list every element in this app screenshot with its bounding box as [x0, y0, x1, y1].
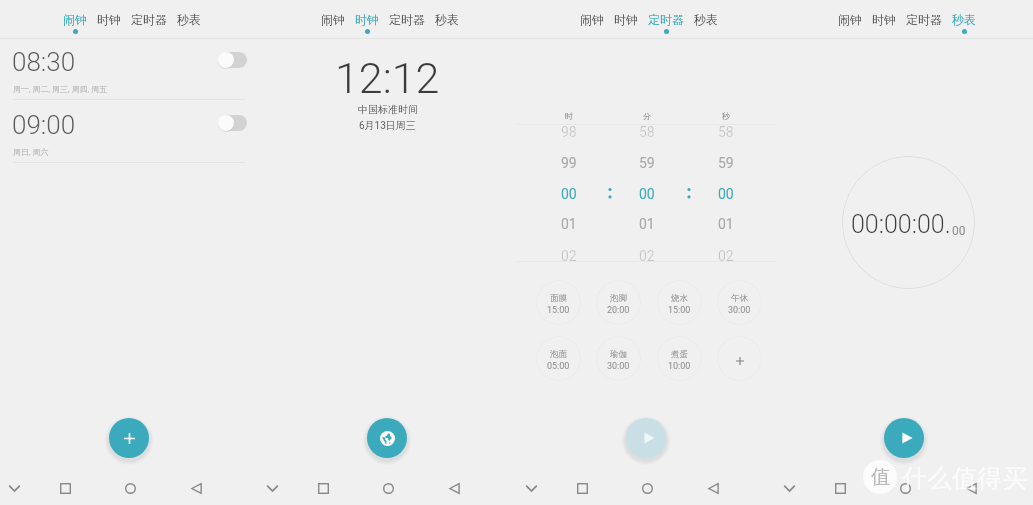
button[interactable]: Home: [372, 472, 404, 504]
button[interactable]: 定时器: [384, 0, 430, 37]
button[interactable]: Back: [180, 472, 212, 504]
staticText: 闹钟: [321, 12, 345, 27]
staticText: 定时器: [131, 12, 167, 27]
staticText: 秒表: [694, 12, 718, 27]
button[interactable]: 秒表: [947, 0, 981, 37]
staticText: 02: [561, 248, 577, 264]
button[interactable]: 瑜伽: [596, 336, 641, 381]
staticText: 秒表: [435, 12, 459, 27]
staticText: 09:00: [12, 110, 76, 140]
button[interactable]: 闹钟: [316, 0, 350, 37]
button[interactable]: 煮蛋: [657, 336, 702, 381]
staticText: 时钟: [872, 12, 896, 27]
button[interactable]: Back: [438, 472, 470, 504]
staticText: 时钟: [355, 12, 379, 27]
staticText: 20:00: [607, 305, 630, 316]
button[interactable]: 时钟: [350, 0, 384, 37]
staticText: 00: [952, 224, 966, 238]
staticText: 30:00: [728, 305, 751, 316]
staticText: 12:12: [335, 53, 440, 103]
button[interactable]: Home: [889, 472, 921, 504]
button[interactable]: 闹钟: [833, 0, 867, 37]
staticText: 58: [718, 124, 734, 140]
staticText: 98: [561, 124, 577, 140]
staticText: 时钟: [614, 12, 638, 27]
button[interactable]: Back: [697, 472, 729, 504]
button[interactable]: 秒表: [689, 0, 723, 37]
staticText: 58: [639, 124, 655, 140]
staticText: 00:00:00.: [851, 210, 951, 239]
button[interactable]: 闹钟: [575, 0, 609, 37]
button[interactable]: Stopwatch: [842, 156, 975, 289]
button[interactable]: Toggle alarm: [218, 51, 247, 69]
button[interactable]: Add preset: [717, 336, 762, 381]
button[interactable]: 定时器: [643, 0, 689, 37]
staticText: 59: [639, 155, 655, 171]
staticText: 15:00: [547, 305, 570, 316]
staticText: 6月13日周三: [359, 119, 416, 132]
staticText: 周一, 周二, 周三, 周四, 周五: [13, 84, 108, 94]
staticText: 01: [561, 216, 577, 232]
button[interactable]: Recents: [49, 472, 81, 504]
staticText: 时钟: [97, 12, 121, 27]
staticText: 00: [561, 186, 577, 202]
staticText: 15:00: [668, 305, 691, 316]
button[interactable]: Add city: [367, 418, 407, 458]
staticText: 30:00: [607, 361, 630, 372]
staticText: 01: [639, 216, 655, 232]
button[interactable]: Recents: [566, 472, 598, 504]
staticText: 00: [718, 186, 734, 202]
staticText: 00: [639, 186, 655, 202]
button[interactable]: Recents: [307, 472, 339, 504]
staticText: 08:30: [12, 47, 76, 77]
staticText: 闹钟: [838, 12, 862, 27]
staticText: 05:00: [547, 361, 570, 372]
button[interactable]: 08:30: [0, 38, 259, 100]
button[interactable]: Home: [631, 472, 663, 504]
button[interactable]: 定时器: [901, 0, 947, 37]
button[interactable]: 秒表: [172, 0, 206, 37]
staticText: 中国标准时间: [358, 103, 418, 116]
staticText: 闹钟: [580, 12, 604, 27]
button[interactable]: 面膜: [536, 280, 581, 325]
staticText: 什么值得买: [902, 463, 1027, 494]
button[interactable]: 秒表: [430, 0, 464, 37]
staticText: 泡面: [550, 349, 567, 360]
staticText: 时: [565, 111, 573, 121]
staticText: 02: [639, 248, 655, 264]
button[interactable]: 09:00: [0, 101, 259, 163]
staticText: 周日, 周六: [13, 147, 49, 157]
button[interactable]: Collapse: [256, 472, 288, 504]
button[interactable]: Collapse: [0, 472, 30, 504]
staticText: 定时器: [906, 12, 942, 27]
staticText: 秒: [722, 111, 730, 121]
staticText: 秒表: [177, 12, 201, 27]
button[interactable]: Add alarm: [109, 418, 149, 458]
staticText: 定时器: [389, 12, 425, 27]
staticText: 面膜: [550, 293, 567, 304]
staticText: 值: [871, 465, 890, 489]
button[interactable]: 时钟: [609, 0, 643, 37]
button[interactable]: 时钟: [867, 0, 901, 37]
button[interactable]: Collapse: [773, 472, 805, 504]
button[interactable]: 闹钟: [58, 0, 92, 37]
staticText: 99: [561, 155, 577, 171]
button[interactable]: 泡脚: [596, 280, 641, 325]
staticText: 分: [643, 111, 651, 121]
button[interactable]: Start stopwatch: [884, 418, 924, 458]
button[interactable]: Toggle alarm: [218, 114, 247, 132]
staticText: 瑜伽: [610, 349, 627, 360]
button[interactable]: 烧水: [657, 280, 702, 325]
button[interactable]: Back: [955, 472, 987, 504]
button[interactable]: 泡面: [536, 336, 581, 381]
button[interactable]: 时钟: [92, 0, 126, 37]
button[interactable]: 午休: [717, 280, 762, 325]
button[interactable]: Recents: [824, 472, 856, 504]
button[interactable]: Home: [114, 472, 146, 504]
staticText: 10:00: [668, 361, 691, 372]
staticText: 煮蛋: [671, 349, 688, 360]
button[interactable]: Collapse: [515, 472, 547, 504]
button[interactable]: Start timer: [626, 418, 666, 458]
staticText: 午休: [731, 293, 748, 304]
button[interactable]: 定时器: [126, 0, 172, 37]
